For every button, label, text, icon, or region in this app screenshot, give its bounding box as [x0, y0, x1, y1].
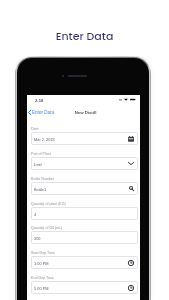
other: Pick time — [128, 260, 134, 266]
button[interactable]: Part of Plant — [31, 150, 138, 170]
staticText: End Drip Time — [31, 276, 54, 280]
staticText: Leaf — [34, 162, 42, 166]
staticText: Bottle1 — [34, 187, 47, 191]
button[interactable]: Quantity of Oil (mL) — [31, 224, 138, 244]
staticText: 300 — [34, 236, 41, 240]
staticText: New Distill — [29, 110, 142, 115]
button[interactable]: Start Drip Time — [31, 249, 138, 269]
staticText: Quantity of plant (KG) — [31, 202, 66, 206]
staticText: Mar 2, 2023 — [34, 137, 55, 141]
other: Pick time — [128, 285, 134, 291]
staticText: 5:00 PM — [34, 286, 49, 290]
other: Search — [129, 186, 134, 191]
button[interactable]: Quantity of plant (KG) — [31, 200, 138, 220]
button[interactable]: Enter Data — [28, 110, 54, 115]
button[interactable]: Bottle Number — [31, 175, 138, 195]
staticText: 1:00 PM — [34, 261, 49, 265]
staticText: Date — [31, 127, 39, 131]
staticText: Part of Plant — [31, 152, 51, 156]
staticText: Enter Data — [0, 28, 169, 43]
staticText: 4 — [34, 212, 37, 216]
staticText: 2:18 — [35, 98, 44, 103]
staticText: Enter Data — [32, 110, 54, 115]
staticText: Quantity of Oil (mL) — [31, 226, 63, 230]
other: Pick date — [128, 136, 134, 142]
staticText: Start Drip Time — [31, 251, 55, 255]
other: Open dropdown — [128, 162, 134, 165]
staticText: Bottle Number — [31, 177, 54, 181]
button[interactable]: Date — [31, 125, 138, 145]
button[interactable]: End Drip Time — [31, 274, 138, 294]
